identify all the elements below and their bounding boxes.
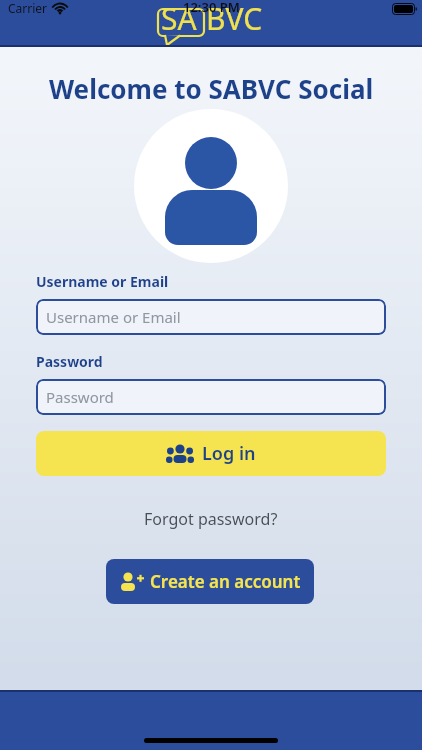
staticText: Carrier (8, 0, 48, 16)
staticText: Log in (202, 441, 256, 466)
staticText: Username or Email (36, 272, 169, 291)
staticText: BVC (206, 0, 263, 39)
button[interactable]: Username or Email (36, 299, 386, 335)
staticText: Create an account (150, 570, 301, 593)
button[interactable]: Forgot password? (144, 508, 278, 530)
staticText: SA (161, 0, 197, 39)
staticText: Password (46, 387, 114, 407)
staticText: Username or Email (46, 307, 181, 327)
button[interactable]: Create an account (106, 559, 314, 604)
staticText: 12:30 PM (183, 0, 240, 16)
button[interactable]: Log in (36, 431, 386, 476)
staticText: Welcome to SABVC Social (49, 71, 374, 106)
staticText: Password (36, 352, 103, 371)
button[interactable]: Password (36, 379, 386, 415)
